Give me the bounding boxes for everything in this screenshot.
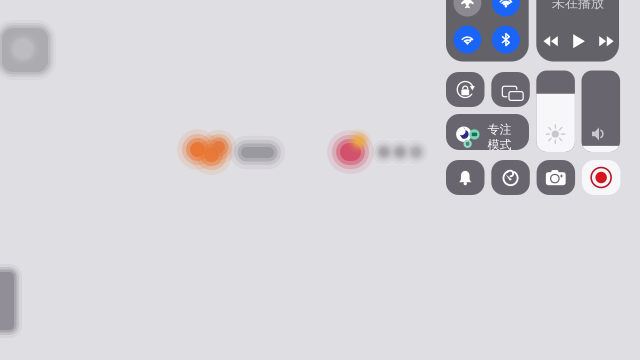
button[interactable]: AirDrop	[492, 0, 520, 17]
button[interactable]: Previous Track	[538, 29, 564, 53]
staticText: 专注	[487, 122, 511, 137]
button[interactable]: Airplane Mode	[453, 0, 481, 17]
button[interactable]: Screen Recording	[582, 160, 620, 195]
button[interactable]: Play	[566, 29, 592, 53]
button[interactable]: Brightness	[536, 70, 575, 152]
button[interactable]: Focus	[446, 114, 529, 150]
button[interactable]: Bluetooth	[492, 26, 520, 54]
button[interactable]: Camera	[537, 160, 575, 195]
staticText: 未在播放	[552, 0, 604, 11]
button[interactable]: Alarm	[446, 160, 484, 195]
button[interactable]: Next Track	[593, 29, 619, 53]
button[interactable]: Screen Mirroring	[491, 72, 530, 107]
button[interactable]: Timer	[491, 160, 530, 195]
staticText: 模式	[487, 137, 511, 152]
button[interactable]: Wi-Fi	[453, 26, 481, 54]
button[interactable]: Volume	[581, 70, 620, 152]
button[interactable]: Rotation Lock	[446, 72, 484, 107]
